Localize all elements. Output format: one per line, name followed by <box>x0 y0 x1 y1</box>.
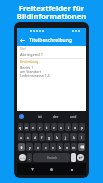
staticText: ist <box>38 114 42 119</box>
staticText: m <box>72 145 76 150</box>
staticText: r <box>39 125 41 130</box>
button[interactable]: a <box>18 133 24 141</box>
staticText: Bezirk 1 am Standort Leifernstrasse 1-5 <box>20 65 50 78</box>
button[interactable]: , <box>27 153 32 162</box>
staticText: n <box>66 145 69 150</box>
staticText: Freitextfelder für Bildinformationen <box>0 3 103 22</box>
button[interactable]: Back <box>28 165 37 174</box>
button[interactable]: c <box>42 143 49 151</box>
button[interactable]: j <box>62 133 69 141</box>
button[interactable]: s <box>25 133 31 141</box>
button[interactable]: Period <box>71 153 76 162</box>
button[interactable]: Symbols <box>19 154 26 161</box>
staticText: ?123 <box>20 156 26 159</box>
staticText: , <box>29 155 30 160</box>
button[interactable]: Back <box>18 36 27 45</box>
button[interactable]: w <box>24 123 29 131</box>
button[interactable]: x <box>34 143 41 151</box>
button[interactable]: Enter <box>77 154 84 161</box>
staticText: y <box>29 145 31 150</box>
staticText: Abriegend 1 <box>20 52 43 57</box>
staticText: Titelbeschreibung <box>29 37 72 44</box>
staticText: i <box>68 125 69 130</box>
button[interactable]: Backspace <box>78 143 85 151</box>
button[interactable]: p <box>79 123 85 131</box>
button[interactable]: f <box>39 133 45 141</box>
button[interactable]: e <box>30 123 36 131</box>
button[interactable]: v <box>50 143 56 151</box>
staticText: z <box>53 125 55 130</box>
staticText: g <box>48 135 51 140</box>
staticText: Titel <box>20 47 26 51</box>
staticText: j <box>65 135 66 140</box>
staticText: x <box>37 145 39 150</box>
button[interactable]: i <box>65 123 71 131</box>
button[interactable]: z <box>51 123 57 131</box>
button[interactable]: Shift <box>18 143 25 151</box>
button[interactable]: Home <box>47 165 56 174</box>
staticText: Beschreibung <box>20 60 39 64</box>
staticText: e <box>32 125 34 130</box>
button[interactable]: k <box>70 133 77 141</box>
staticText: h <box>56 135 59 140</box>
staticText: und <box>70 114 77 119</box>
button[interactable]: r <box>37 123 43 131</box>
staticText: l <box>81 135 82 140</box>
staticText: w <box>25 125 28 130</box>
staticText: c <box>45 145 47 150</box>
button[interactable]: y <box>26 143 33 151</box>
staticText: Deutsch <box>47 156 57 160</box>
staticText: . <box>73 156 74 160</box>
button[interactable]: Google assistant <box>19 114 24 119</box>
staticText: u <box>60 125 63 130</box>
staticText: b <box>59 145 62 150</box>
button[interactable]: Space <box>33 153 70 162</box>
staticText: t <box>46 125 48 130</box>
button[interactable]: l <box>78 133 85 141</box>
staticText: s <box>27 135 29 140</box>
staticText: v <box>52 145 54 150</box>
button[interactable]: t <box>44 123 50 131</box>
staticText: o <box>74 125 77 130</box>
staticText: p <box>81 125 84 130</box>
button[interactable]: b <box>57 143 63 151</box>
button[interactable]: n <box>64 143 70 151</box>
staticText: der <box>53 114 59 119</box>
button[interactable]: h <box>54 133 61 141</box>
staticText: d <box>34 135 37 140</box>
staticText: f <box>41 135 43 140</box>
button[interactable]: Recents <box>67 165 76 174</box>
button[interactable]: m <box>71 143 77 151</box>
button[interactable]: o <box>72 123 78 131</box>
button[interactable]: u <box>58 123 64 131</box>
button[interactable]: g <box>46 133 53 141</box>
staticText: k <box>73 135 75 140</box>
button[interactable]: d <box>32 133 38 141</box>
staticText: q <box>19 125 22 130</box>
button[interactable]: q <box>18 123 23 131</box>
staticText: a <box>20 135 22 140</box>
